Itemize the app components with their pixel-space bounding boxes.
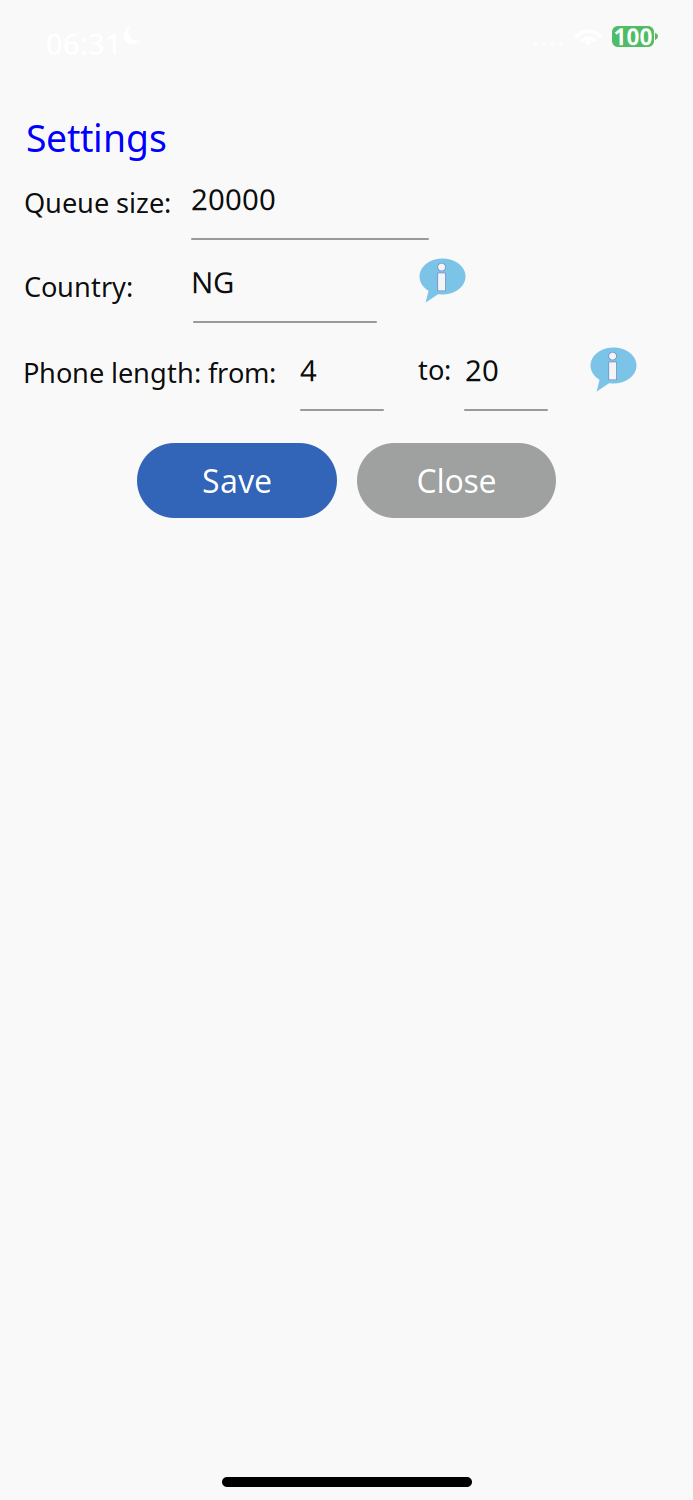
button[interactable]: Phone length information [590, 347, 637, 392]
staticText: Save [202, 459, 272, 502]
staticText: Country: [24, 268, 133, 305]
staticText: to: [418, 351, 451, 388]
button[interactable]: Save [137, 443, 337, 518]
staticText: Phone length: from: [23, 354, 276, 391]
staticText: 20 [465, 350, 499, 390]
staticText: 4 [300, 350, 317, 390]
button[interactable]: Country information [419, 258, 466, 303]
staticText: Close [416, 459, 496, 502]
staticText: Settings [26, 112, 167, 163]
staticText: 20000 [191, 179, 276, 219]
staticText: Queue size: [24, 184, 171, 221]
staticText: 100 [613, 21, 652, 51]
button[interactable]: Close [357, 443, 556, 518]
staticText: NG [191, 262, 234, 302]
